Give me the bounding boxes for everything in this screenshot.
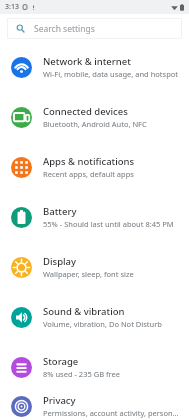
button[interactable]: Apps & notifications bbox=[0, 142, 189, 192]
staticText: Privacy bbox=[43, 394, 76, 407]
staticText: Sound & vibration bbox=[43, 305, 125, 318]
button[interactable]: Privacy bbox=[0, 392, 189, 420]
button[interactable]: Search settings bbox=[7, 18, 182, 39]
staticText: Network & internet bbox=[43, 55, 131, 68]
button[interactable]: Display bbox=[0, 242, 189, 292]
staticText: Battery bbox=[43, 205, 77, 218]
staticText: Wi-Fi, mobile, data usage, and hotspot bbox=[43, 69, 178, 79]
button[interactable]: Network & internet bbox=[0, 42, 189, 92]
staticText: Display bbox=[43, 255, 77, 268]
staticText: 8% used - 235 GB free bbox=[43, 369, 120, 379]
button[interactable]: Storage bbox=[0, 342, 189, 392]
staticText: Recent apps, default apps bbox=[43, 169, 134, 179]
staticText: Wallpaper, sleep, font size bbox=[43, 269, 134, 279]
button[interactable]: Battery bbox=[0, 192, 189, 242]
staticText: 3:13 bbox=[5, 2, 19, 12]
button[interactable]: Sound & vibration bbox=[0, 292, 189, 342]
button[interactable]: Connected devices bbox=[0, 92, 189, 142]
staticText: Apps & notifications bbox=[43, 155, 135, 168]
staticText: Permissions, account activity, personal … bbox=[43, 408, 181, 418]
staticText: 55% - Should last until about 8:45 PM bbox=[43, 219, 174, 229]
staticText: Volume, vibration, Do Not Disturb bbox=[43, 319, 162, 329]
staticText: Connected devices bbox=[43, 105, 128, 118]
staticText: Bluetooth, Android Auto, NFC bbox=[43, 119, 147, 129]
staticText: Storage bbox=[43, 355, 79, 368]
staticText: Search settings bbox=[34, 23, 95, 35]
